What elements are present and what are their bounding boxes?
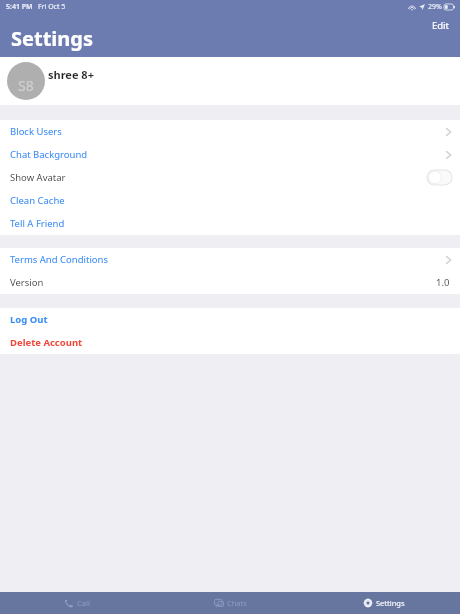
staticText: Delete Account (10, 336, 83, 349)
staticText: 29% (428, 2, 442, 12)
button[interactable]: Version (0, 271, 460, 294)
staticText: Show Avatar (10, 171, 66, 184)
staticText: Fri Oct 5 (38, 2, 66, 12)
staticText: Block Users (10, 125, 62, 138)
staticText: shree 8+ (48, 67, 94, 82)
staticText: 5:41 PM (6, 2, 33, 12)
button[interactable]: Log Out (0, 308, 460, 331)
button[interactable]: Tell A Friend (0, 212, 460, 235)
staticText: Tell A Friend (10, 217, 65, 230)
staticText: Chats (227, 598, 247, 608)
staticText: Version (10, 276, 44, 289)
button[interactable]: Terms And Conditions (0, 248, 460, 271)
button[interactable]: Block Users (0, 120, 460, 143)
button[interactable]: Clean Cache (0, 189, 460, 212)
button[interactable]: Edit (426, 17, 456, 34)
staticText: Settings (376, 598, 405, 608)
button[interactable]: Chat Background (0, 143, 460, 166)
button[interactable]: Show Avatar toggle, off (427, 170, 452, 185)
staticText: S8 (18, 76, 34, 95)
staticText: Terms And Conditions (10, 253, 109, 266)
button[interactable]: Delete Account (0, 331, 460, 354)
staticText: 1.0 (436, 276, 450, 289)
button[interactable]: Chats (154, 592, 307, 614)
button[interactable]: S8 (0, 57, 460, 105)
button[interactable]: Show Avatar (0, 166, 460, 189)
button[interactable]: Call (0, 592, 154, 614)
staticText: Chat Background (10, 148, 88, 161)
staticText: Clean Cache (10, 194, 65, 207)
staticText: Log Out (10, 313, 48, 326)
staticText: Edit (432, 19, 450, 32)
staticText: Settings (11, 25, 93, 52)
staticText: Call (77, 598, 90, 608)
button[interactable]: Settings (307, 592, 460, 614)
